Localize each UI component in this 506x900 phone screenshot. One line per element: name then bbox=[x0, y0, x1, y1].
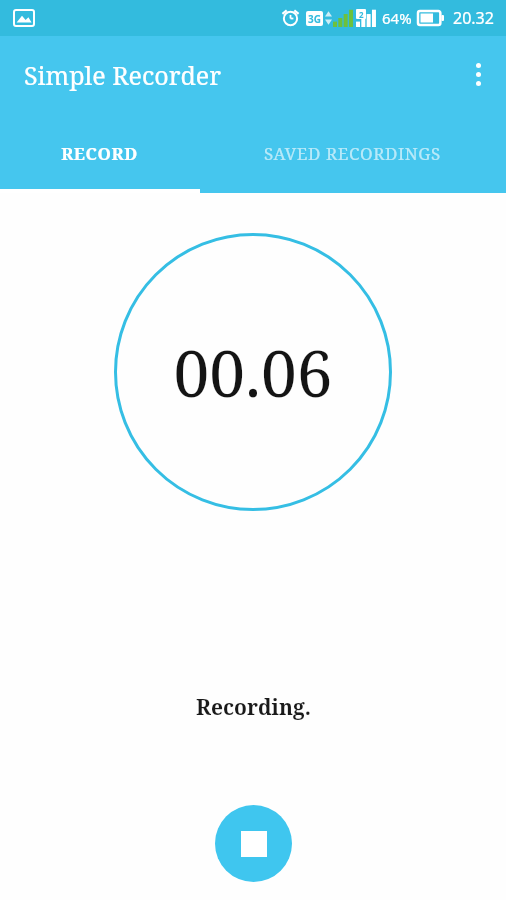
staticText: 2 bbox=[359, 9, 364, 19]
staticText: 00.06 bbox=[173, 329, 333, 416]
button[interactable]: RECORD bbox=[0, 113, 198, 193]
staticText: 20.32 bbox=[453, 7, 494, 29]
staticText: SAVED RECORDINGS bbox=[264, 142, 441, 165]
staticText: RECORD bbox=[61, 142, 138, 165]
staticText: 3G bbox=[308, 12, 321, 26]
button[interactable]: SAVED RECORDINGS bbox=[198, 113, 506, 193]
button[interactable]: More options bbox=[450, 36, 506, 113]
staticText: Recording. bbox=[196, 693, 311, 722]
staticText: Simple Recorder bbox=[24, 58, 221, 92]
button[interactable]: Stop recording bbox=[215, 805, 292, 882]
staticText: 64% bbox=[382, 8, 412, 28]
